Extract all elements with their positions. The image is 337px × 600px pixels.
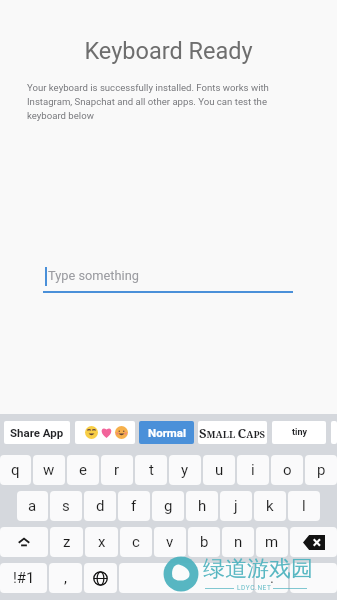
button[interactable]: Enter [290, 563, 337, 593]
staticText: y [181, 461, 189, 479]
staticText: Type something [48, 268, 139, 283]
staticText: SMALL CAPS [199, 424, 266, 442]
staticText: d [96, 497, 105, 515]
staticText: r [114, 461, 120, 479]
button[interactable]: l [288, 491, 320, 521]
staticText: Keyboard Ready [0, 37, 337, 65]
button[interactable]: h [186, 491, 218, 521]
staticText: Share App [10, 426, 64, 439]
staticText: z [63, 533, 71, 551]
staticText: w [43, 461, 55, 479]
button[interactable]: x [85, 527, 118, 557]
staticText: q [11, 461, 20, 479]
button[interactable]: w [33, 455, 65, 485]
staticText: !#1 [13, 569, 35, 587]
staticText: , [64, 569, 67, 587]
button[interactable]: Shift [0, 527, 48, 557]
button[interactable]: c [120, 527, 152, 557]
button[interactable]: d [84, 491, 116, 521]
button[interactable] [75, 421, 135, 444]
staticText: e [79, 461, 87, 479]
staticText: s [62, 497, 70, 515]
button[interactable]: q [0, 455, 31, 485]
button[interactable]: Share App [4, 421, 70, 444]
button[interactable]: i [237, 455, 269, 485]
button[interactable]: b [188, 527, 220, 557]
button[interactable]: SMALL CAPS [198, 421, 267, 444]
button[interactable]: g [152, 491, 184, 521]
staticText: l [302, 497, 306, 515]
staticText: f [131, 497, 137, 515]
button[interactable]: f [118, 491, 150, 521]
staticText: h [198, 497, 207, 515]
button[interactable]: n [222, 527, 254, 557]
staticText: b [200, 533, 209, 551]
staticText: p [317, 461, 326, 479]
button[interactable]: tiny [272, 421, 326, 444]
staticText: g [164, 497, 173, 515]
button[interactable]: Space [119, 563, 253, 593]
button[interactable]: o [271, 455, 303, 485]
staticText: Normal [148, 426, 186, 439]
button[interactable]: a [17, 491, 48, 521]
button[interactable]: u [203, 455, 235, 485]
button[interactable]: Change keyboard language [84, 563, 117, 593]
button[interactable]: s [50, 491, 82, 521]
staticText: a [28, 497, 37, 515]
staticText: n [234, 533, 243, 551]
staticText: LDYC.NET [237, 584, 272, 592]
button[interactable] [331, 421, 337, 444]
button[interactable]: . [255, 563, 288, 593]
button[interactable]: e [67, 455, 99, 485]
staticText: Your keyboard is successfully installed.… [27, 82, 285, 122]
staticText: c [132, 533, 140, 551]
staticText: v [166, 533, 174, 551]
staticText: i [251, 461, 255, 479]
button[interactable]: m [256, 527, 288, 557]
staticText: u [215, 461, 224, 479]
button[interactable]: k [254, 491, 286, 521]
staticText: m [265, 533, 279, 551]
button[interactable]: v [154, 527, 186, 557]
button[interactable]: j [220, 491, 252, 521]
button[interactable]: Backspace [290, 527, 337, 557]
staticText: 绿道游戏园 [203, 555, 313, 583]
staticText: j [234, 497, 238, 515]
button[interactable]: y [169, 455, 201, 485]
staticText: o [283, 461, 292, 479]
button[interactable]: r [101, 455, 133, 485]
button[interactable]: z [50, 527, 83, 557]
button[interactable]: t [135, 455, 167, 485]
staticText: k [266, 497, 274, 515]
staticText: x [98, 533, 106, 551]
button[interactable]: p [305, 455, 337, 485]
button[interactable]: !#1 [0, 563, 47, 593]
staticText: . [270, 569, 274, 587]
staticText: tiny [292, 427, 307, 438]
button[interactable]: Normal [139, 421, 194, 444]
staticText: t [149, 461, 154, 479]
button[interactable]: , [49, 563, 82, 593]
